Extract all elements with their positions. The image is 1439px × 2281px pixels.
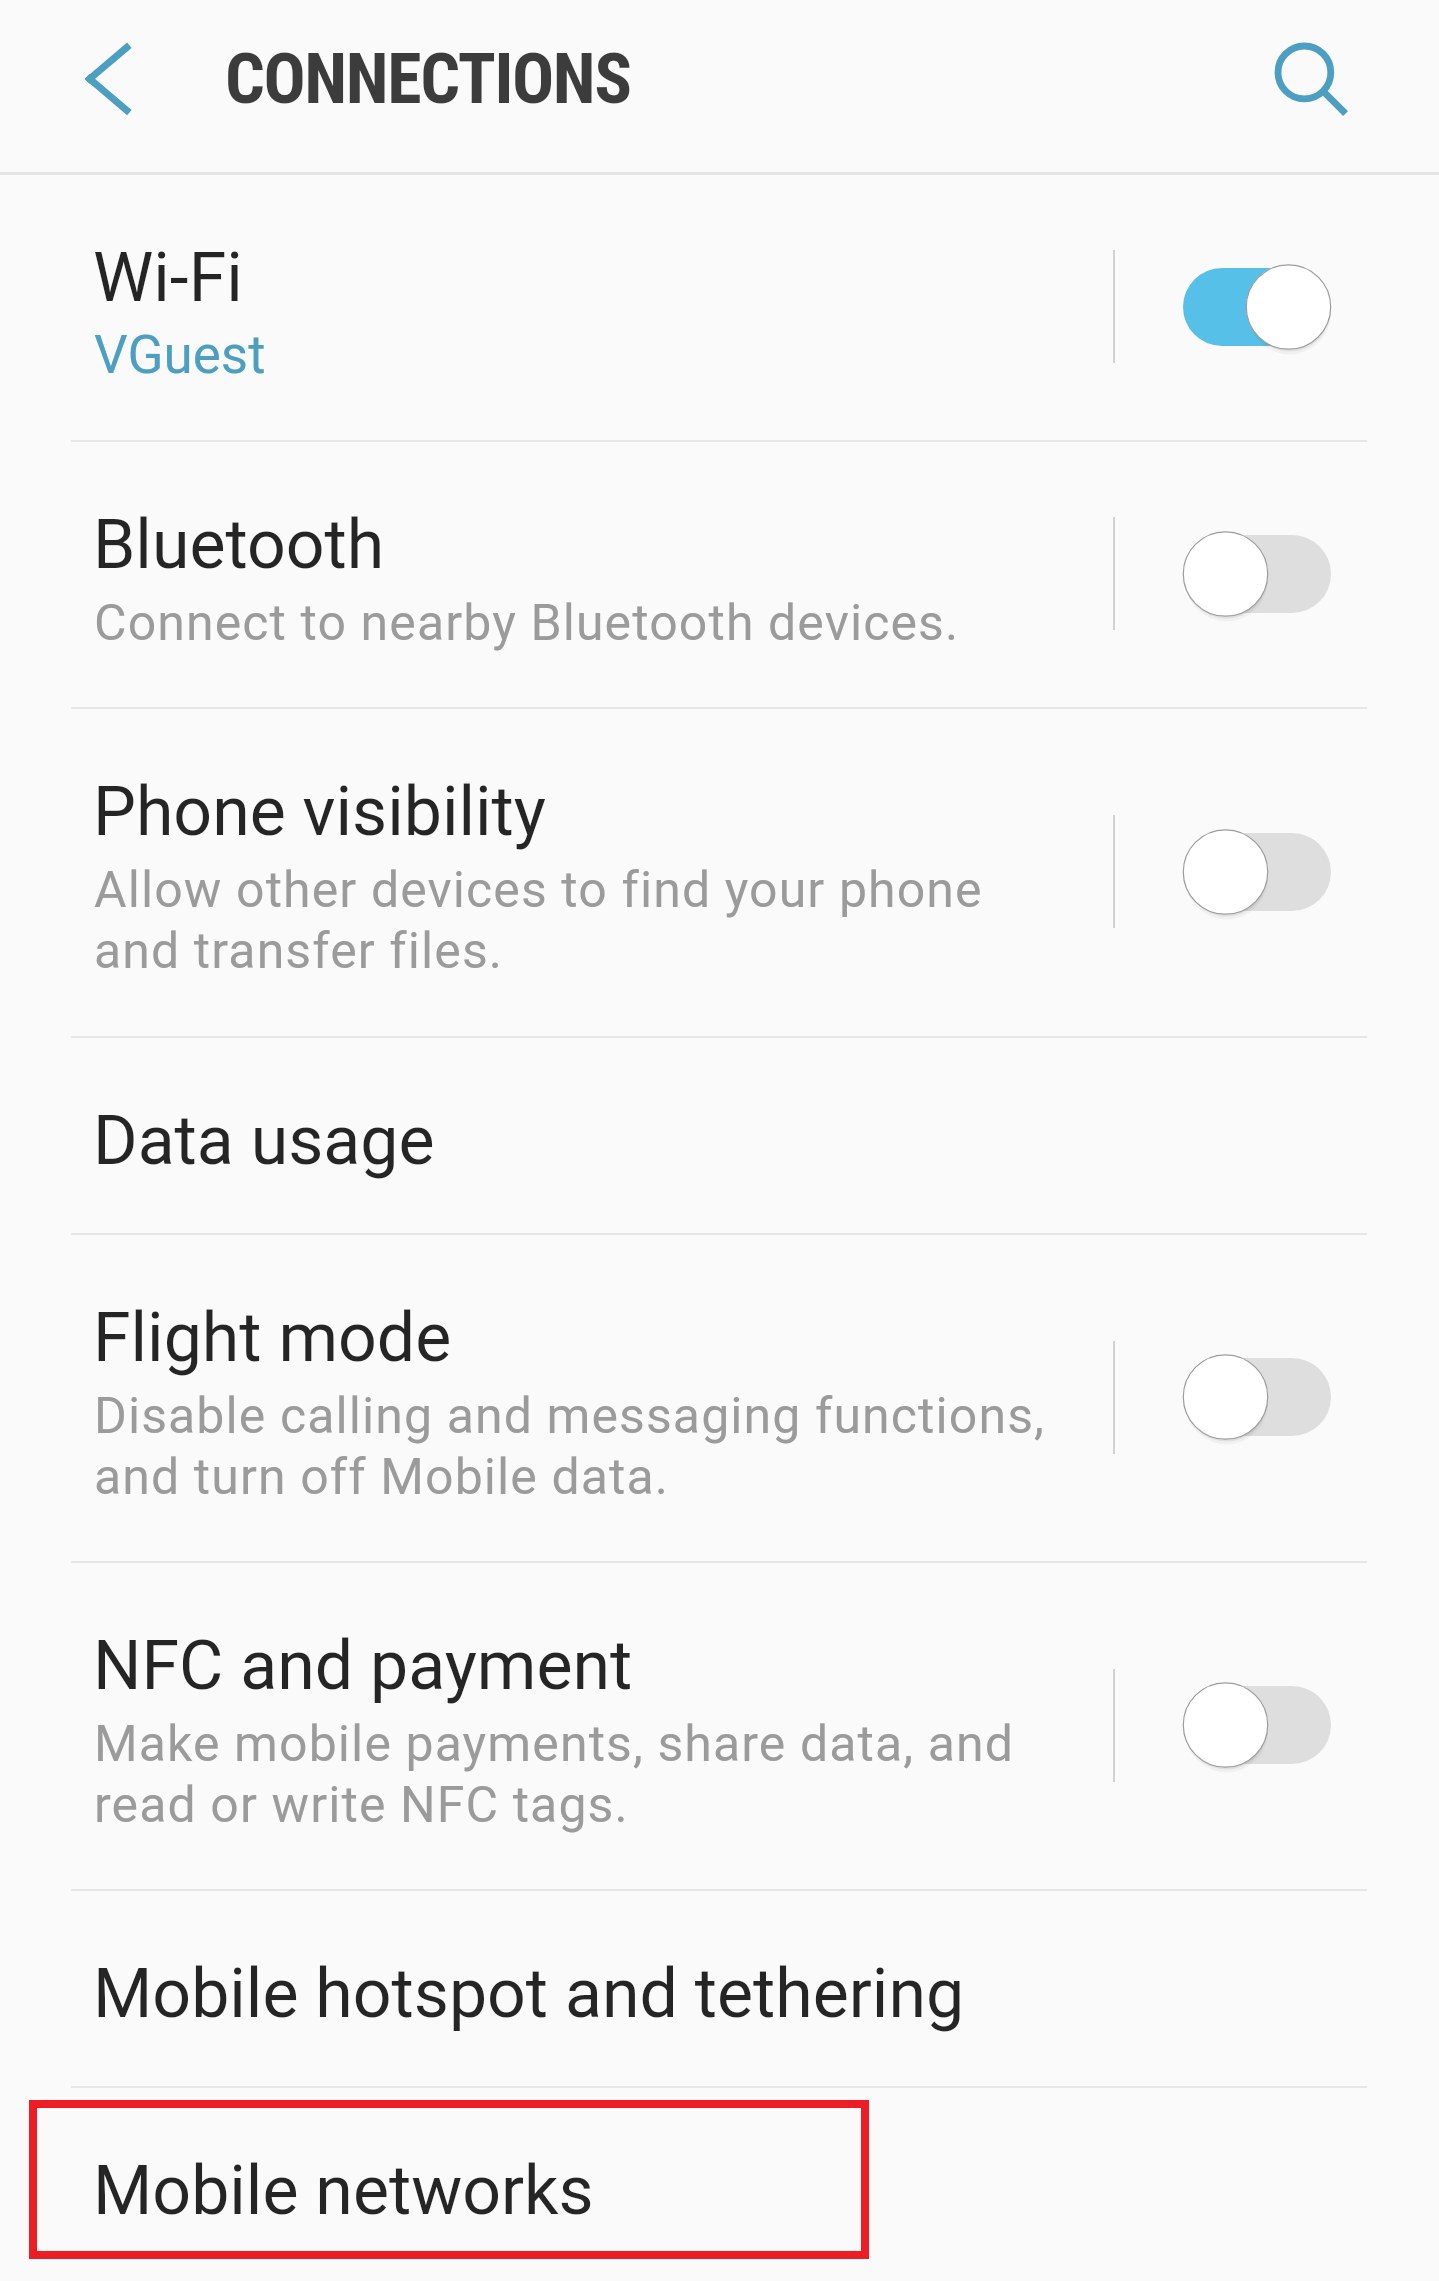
button[interactable]: Wi-Fi switch [1160, 222, 1380, 392]
button[interactable]: Flight mode [0, 1233, 1439, 1561]
staticText: Flight mode [93, 1298, 452, 1378]
button[interactable]: Bluetooth [0, 440, 1439, 707]
staticText: Mobile hotspot and tethering [93, 1954, 965, 2034]
staticText: Allow other devices to find your phone a… [94, 861, 983, 980]
staticText: Connect to nearby Bluetooth devices. [94, 594, 960, 653]
button[interactable]: Bluetooth switch [1160, 489, 1380, 659]
button[interactable]: Data usage [0, 1036, 1439, 1233]
button[interactable]: Flight mode switch [1160, 1312, 1380, 1482]
staticText: Data usage [93, 1101, 435, 1181]
button[interactable]: Navigate up [20, 9, 160, 149]
staticText: Mobile networks [93, 2151, 594, 2231]
button[interactable]: Phone visibility [0, 707, 1439, 1036]
staticText: Bluetooth [93, 505, 385, 585]
button[interactable]: Phone visibility switch [1160, 787, 1380, 957]
button[interactable]: NFC and payment [0, 1561, 1439, 1889]
staticText: Make mobile payments, share data, and re… [94, 1715, 1015, 1834]
staticText: Wi-Fi [93, 238, 243, 318]
staticText: NFC and payment [93, 1626, 633, 1706]
staticText: Phone visibility [93, 772, 546, 852]
staticText: VGuest [94, 324, 266, 386]
button[interactable]: Mobile hotspot and tethering [0, 1889, 1439, 2086]
staticText: CONNECTIONS [225, 38, 631, 120]
button[interactable]: Wi-Fi [0, 173, 1439, 440]
staticText: Disable calling and messaging functions,… [94, 1387, 1045, 1506]
button[interactable]: Search [1234, 3, 1374, 143]
button[interactable]: Mobile networks [0, 2086, 1439, 2281]
button[interactable]: NFC and payment switch [1160, 1640, 1380, 1810]
